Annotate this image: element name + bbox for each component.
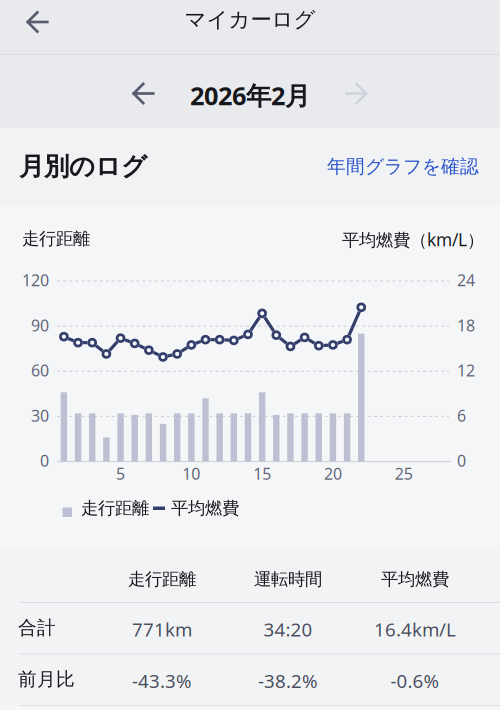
staticText: -38.2% (258, 668, 318, 693)
staticText: 15 (253, 463, 271, 484)
staticText: 運転時間 (254, 569, 322, 590)
staticText: 年間グラフを確認 (327, 155, 479, 178)
staticText: 月別のログ (19, 151, 147, 182)
staticText: 120 (22, 269, 49, 291)
button[interactable]: 戻る (14, 0, 60, 44)
staticText: 走行距離 (81, 497, 149, 519)
staticText: 平均燃費（km/L） (342, 228, 484, 251)
staticText: 前月比 (18, 668, 75, 691)
staticText: 平均燃費 (171, 497, 239, 519)
staticText: 平均燃費 (381, 569, 449, 590)
button[interactable]: 年間グラフを確認 (327, 155, 479, 178)
staticText: 60 (31, 360, 49, 381)
button[interactable]: 前の月 (121, 71, 165, 115)
staticText: 34:20 (263, 617, 312, 642)
staticText: 走行距離 (22, 228, 90, 249)
staticText: -0.6% (390, 668, 439, 693)
staticText: 5 (116, 463, 125, 484)
staticText: 走行距離 (128, 569, 196, 590)
staticText: 771km (132, 617, 192, 642)
staticText: 0 (457, 450, 466, 471)
staticText: 2026年2月 (190, 78, 310, 112)
staticText: -43.3% (132, 668, 192, 693)
staticText: 25 (395, 463, 413, 484)
staticText: 24 (457, 269, 475, 291)
staticText: 0 (40, 450, 49, 471)
staticText: 30 (31, 405, 49, 426)
staticText: 12 (457, 360, 475, 381)
staticText: 合計 (18, 616, 56, 639)
staticText: 18 (457, 315, 475, 336)
staticText: マイカーログ (184, 6, 315, 33)
staticText: 16.4km/L (374, 617, 456, 642)
staticText: 20 (324, 463, 342, 484)
staticText: 90 (31, 315, 49, 336)
button[interactable]: 次の月 (334, 71, 378, 115)
staticText: 6 (457, 405, 466, 426)
staticText: 10 (182, 463, 200, 484)
